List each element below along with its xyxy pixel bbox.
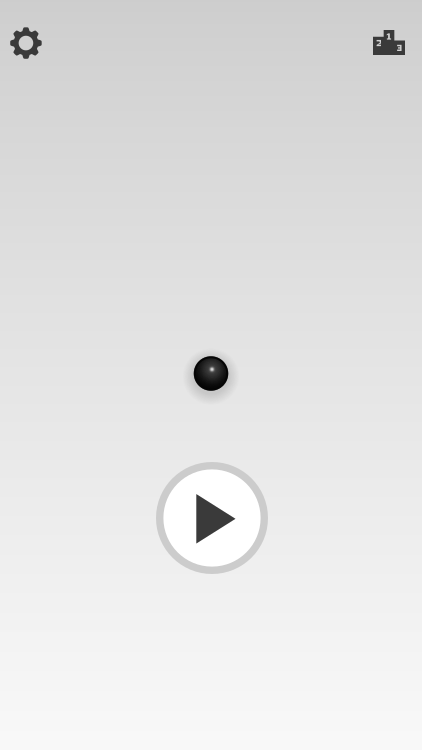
button[interactable]: Play xyxy=(156,462,268,574)
button[interactable]: Leaderboard xyxy=(367,24,411,61)
button[interactable]: Settings xyxy=(4,21,48,65)
